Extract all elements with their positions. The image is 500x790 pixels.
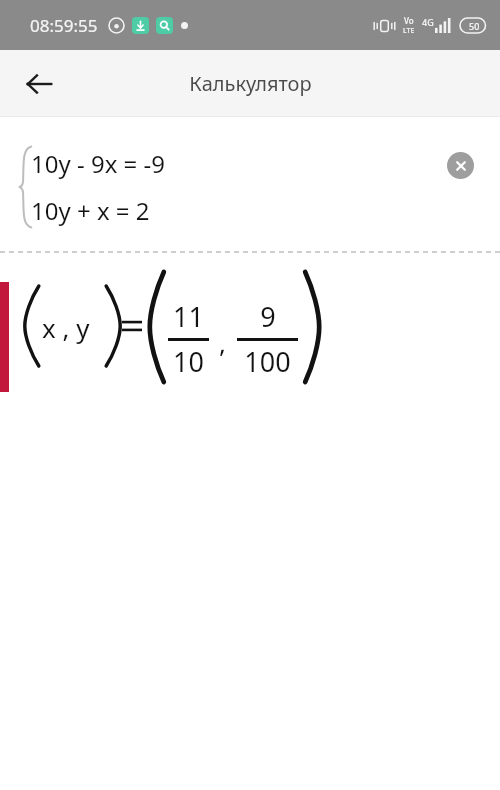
staticText: 08:59:55 xyxy=(30,14,98,37)
staticText: 10y + x = 2 xyxy=(31,194,150,227)
button[interactable]: Назад xyxy=(16,61,62,107)
staticText: 9 xyxy=(260,298,276,335)
staticText: 50 xyxy=(469,20,480,32)
staticText: LTE xyxy=(403,26,415,36)
staticText: 10y - 9x = -9 xyxy=(31,147,165,180)
staticText: 100 xyxy=(244,343,291,380)
staticText: 4G xyxy=(422,16,434,28)
button[interactable]: Очистить xyxy=(435,140,485,190)
staticText: 10 xyxy=(173,343,204,380)
staticText: x , y xyxy=(42,310,90,345)
staticText: Калькулятор xyxy=(189,70,312,97)
staticText: , xyxy=(219,325,226,360)
staticText: Vo xyxy=(404,15,414,26)
staticText: 11 xyxy=(173,298,204,335)
